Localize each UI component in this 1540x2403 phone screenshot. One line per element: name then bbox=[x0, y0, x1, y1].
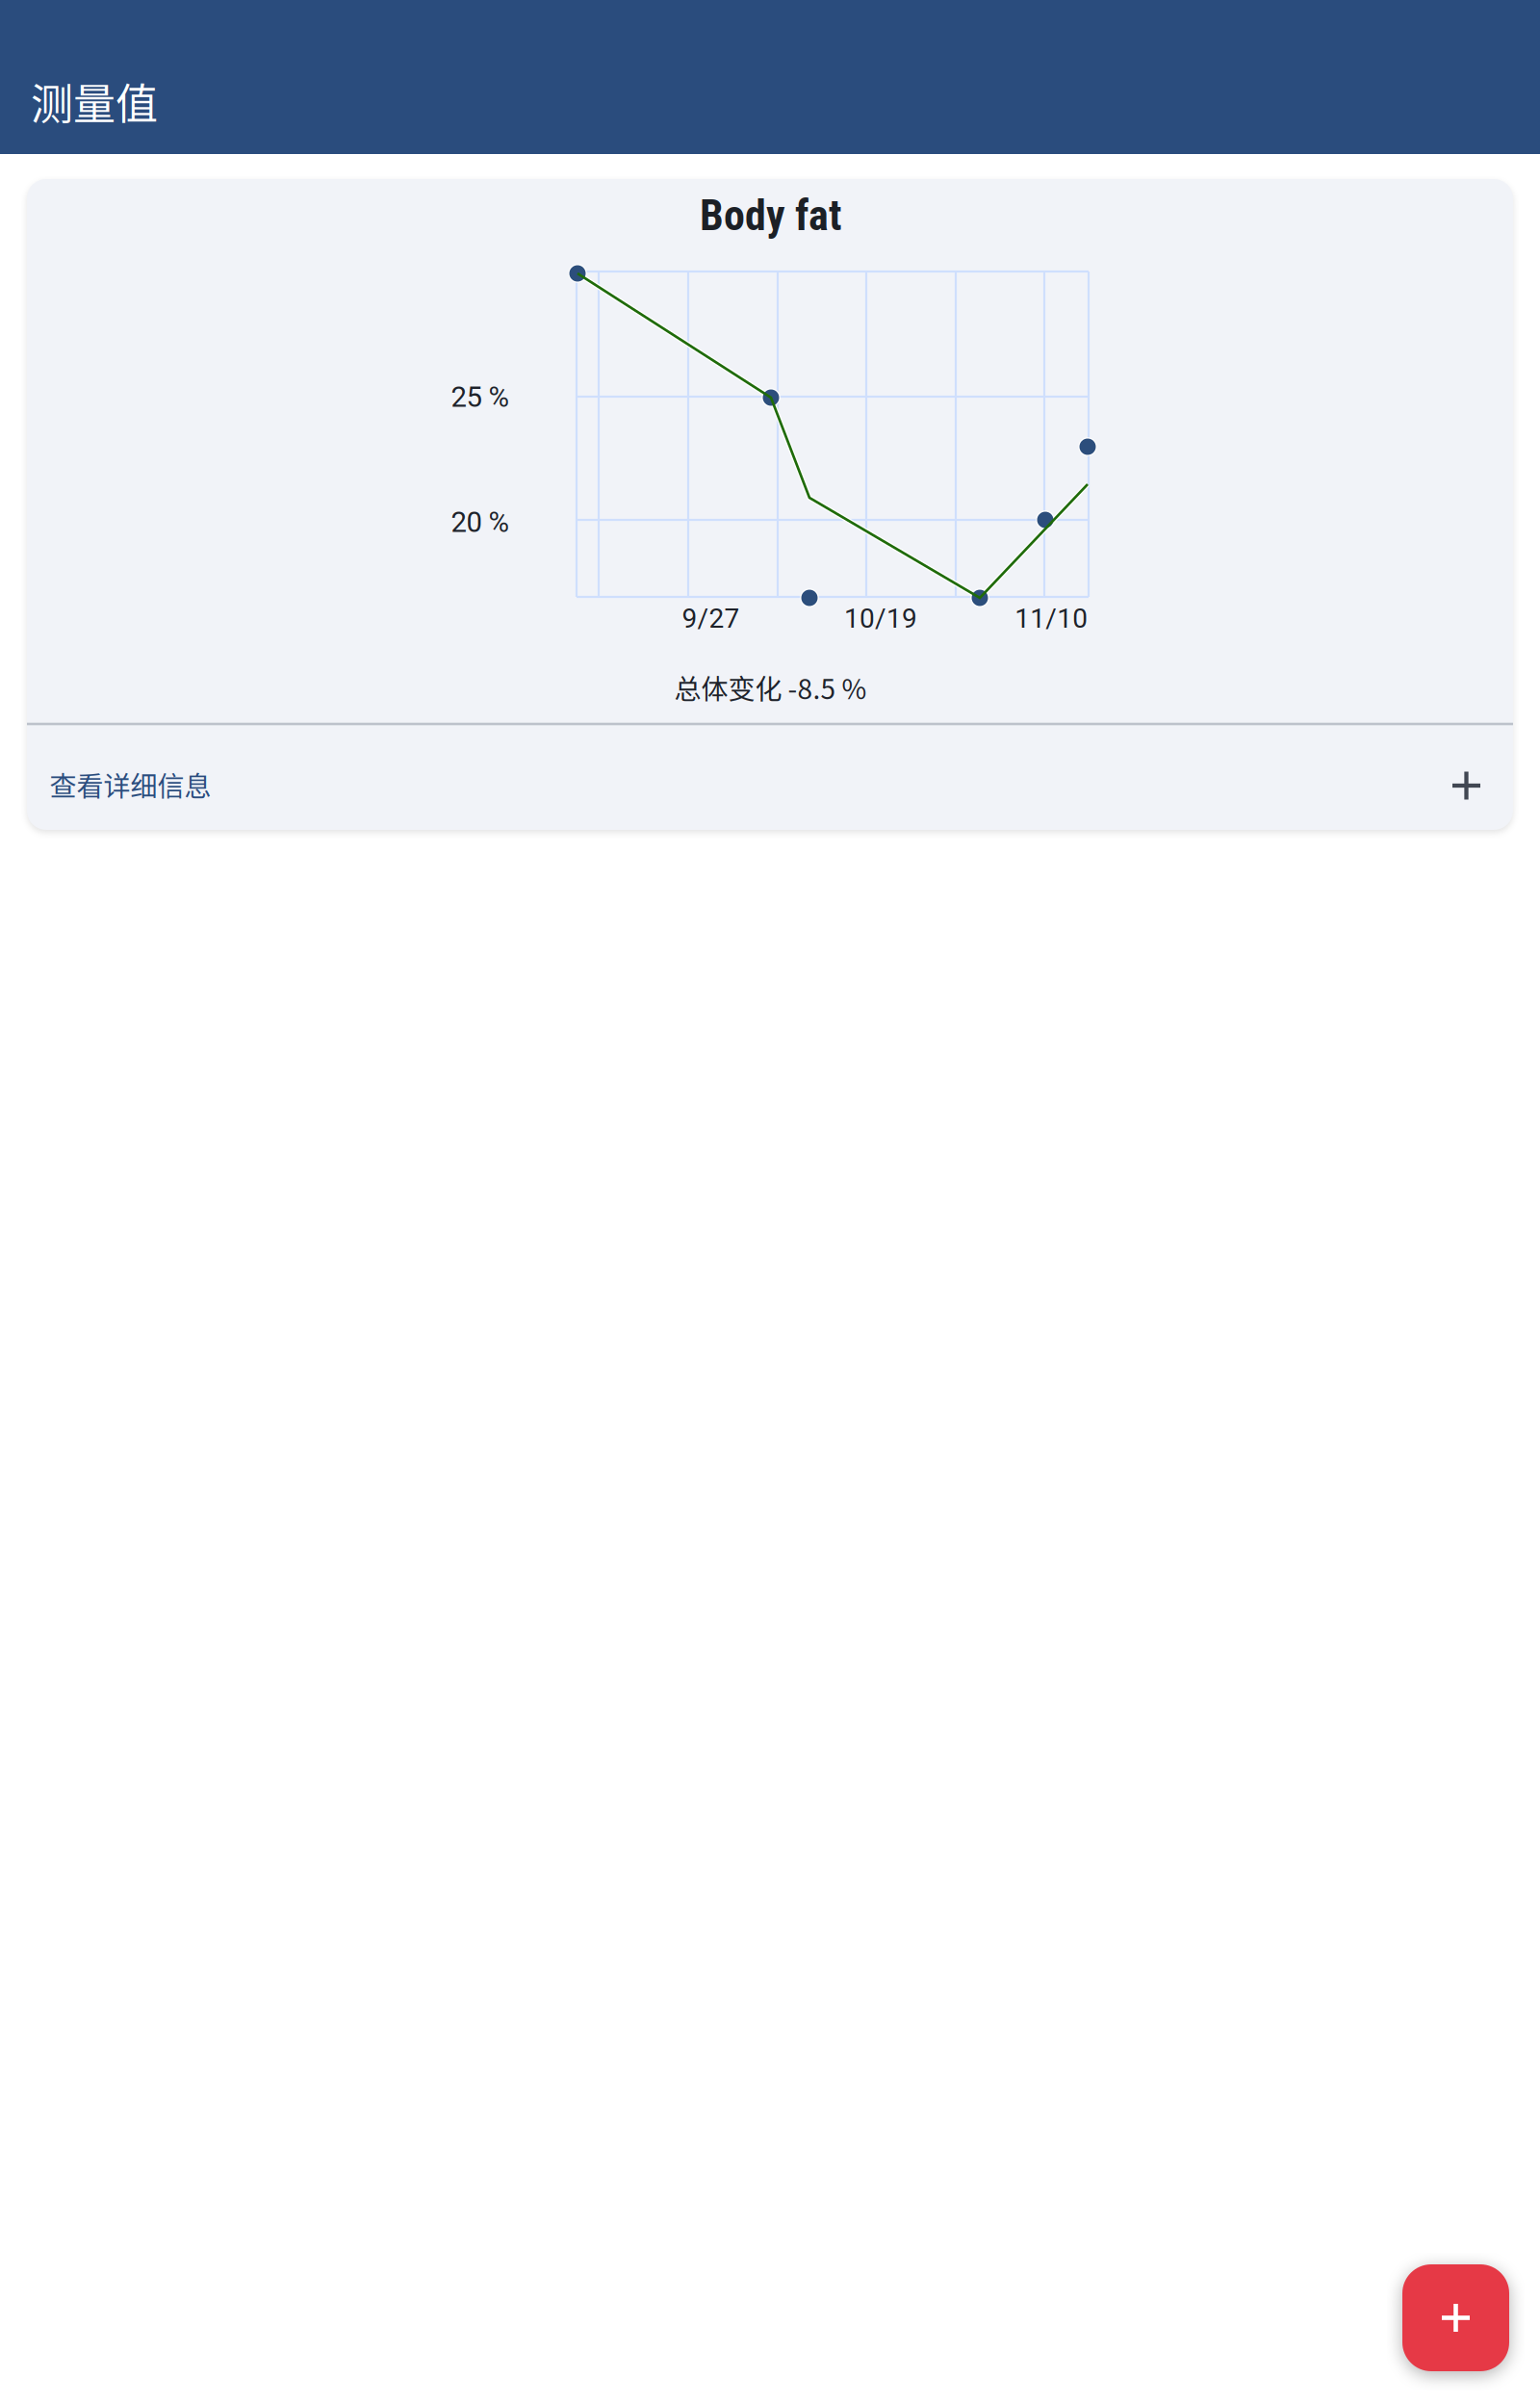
staticText: 9/27 bbox=[682, 603, 740, 634]
button[interactable]: Add bbox=[1424, 743, 1509, 828]
button[interactable]: Add measurement bbox=[1402, 2264, 1509, 2371]
button[interactable]: 查看详细信息 bbox=[27, 725, 1378, 830]
staticText: Body fat bbox=[700, 191, 841, 240]
staticText: 10/19 bbox=[844, 603, 917, 634]
staticText: 11/10 bbox=[1015, 603, 1088, 634]
staticText: 20 % bbox=[451, 506, 509, 539]
staticText: 测量值 bbox=[31, 70, 158, 132]
staticText: 25 % bbox=[451, 381, 509, 414]
staticText: 总体变化 -8.5 % bbox=[674, 668, 867, 707]
staticText: 查看详细信息 bbox=[50, 765, 211, 804]
